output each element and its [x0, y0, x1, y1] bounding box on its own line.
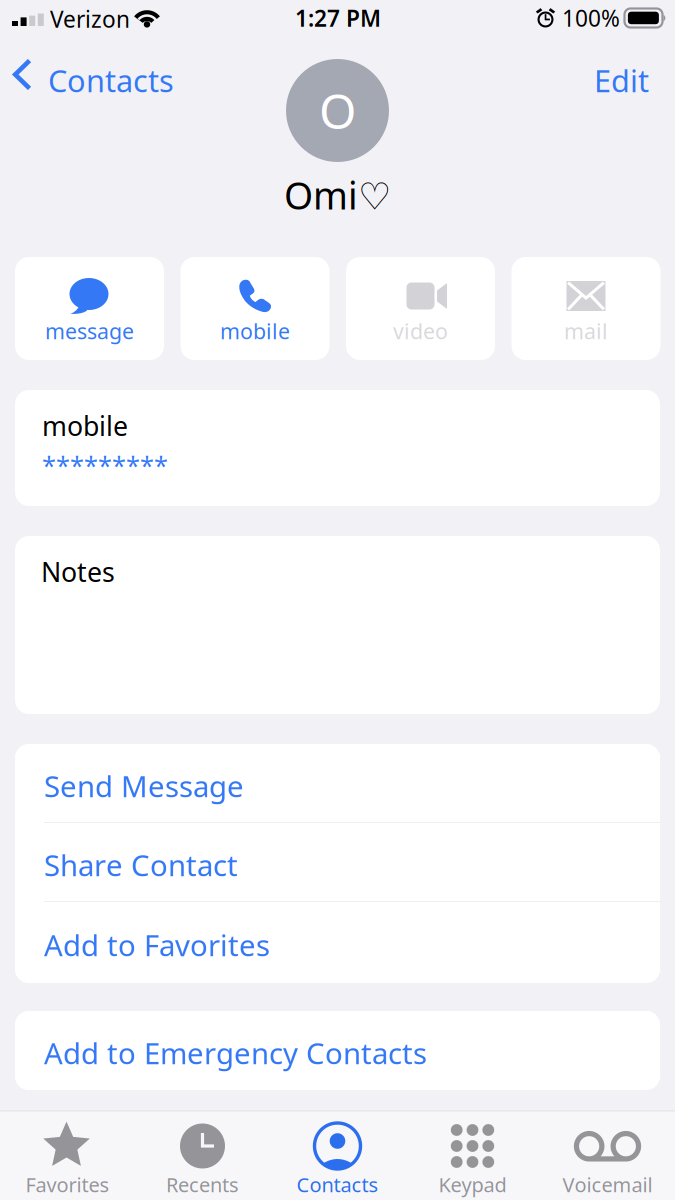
staticText: 1:27 PM [295, 3, 381, 33]
button[interactable]: Keypad [405, 1111, 540, 1200]
staticText: 100% [562, 3, 620, 33]
button[interactable]: Add to Emergency Contacts [15, 1011, 660, 1090]
staticText: Add to Emergency Contacts [44, 1033, 427, 1072]
staticText: Favorites [25, 1171, 109, 1198]
staticText: Contacts [48, 60, 174, 101]
staticText: Omi♡ [284, 170, 391, 220]
button[interactable]: Share Contact [15, 823, 660, 902]
staticText: ********* [42, 448, 168, 482]
button[interactable]: Contacts [270, 1111, 405, 1200]
staticText: Edit [594, 60, 649, 101]
staticText: O [319, 79, 356, 142]
staticText: mail [564, 317, 608, 345]
staticText: message [45, 317, 134, 345]
staticText: Keypad [438, 1171, 506, 1198]
staticText: video [393, 317, 448, 345]
staticText: Share Contact [44, 845, 238, 884]
button[interactable]: Edit [572, 48, 675, 102]
button[interactable]: Recents [135, 1111, 270, 1200]
staticText: Add to Favorites [44, 925, 270, 964]
button[interactable]: Voicemail [540, 1111, 675, 1200]
button[interactable]: mobile [180, 257, 329, 360]
button[interactable]: Add to Favorites [15, 902, 660, 983]
button[interactable]: Favorites [0, 1111, 135, 1200]
staticText: Verizon [50, 4, 130, 34]
staticText: mobile [220, 317, 290, 345]
staticText: Contacts [296, 1171, 378, 1198]
staticText: Voicemail [562, 1171, 652, 1198]
staticText: mobile [42, 408, 128, 443]
button[interactable]: mail [511, 257, 660, 360]
staticText: Recents [166, 1171, 239, 1198]
button[interactable]: video [346, 257, 495, 360]
button[interactable]: message [15, 257, 164, 360]
button[interactable]: Contacts [0, 48, 185, 102]
button[interactable]: Send Message [15, 744, 660, 823]
staticText: Send Message [44, 766, 244, 805]
staticText: Notes [41, 554, 115, 589]
